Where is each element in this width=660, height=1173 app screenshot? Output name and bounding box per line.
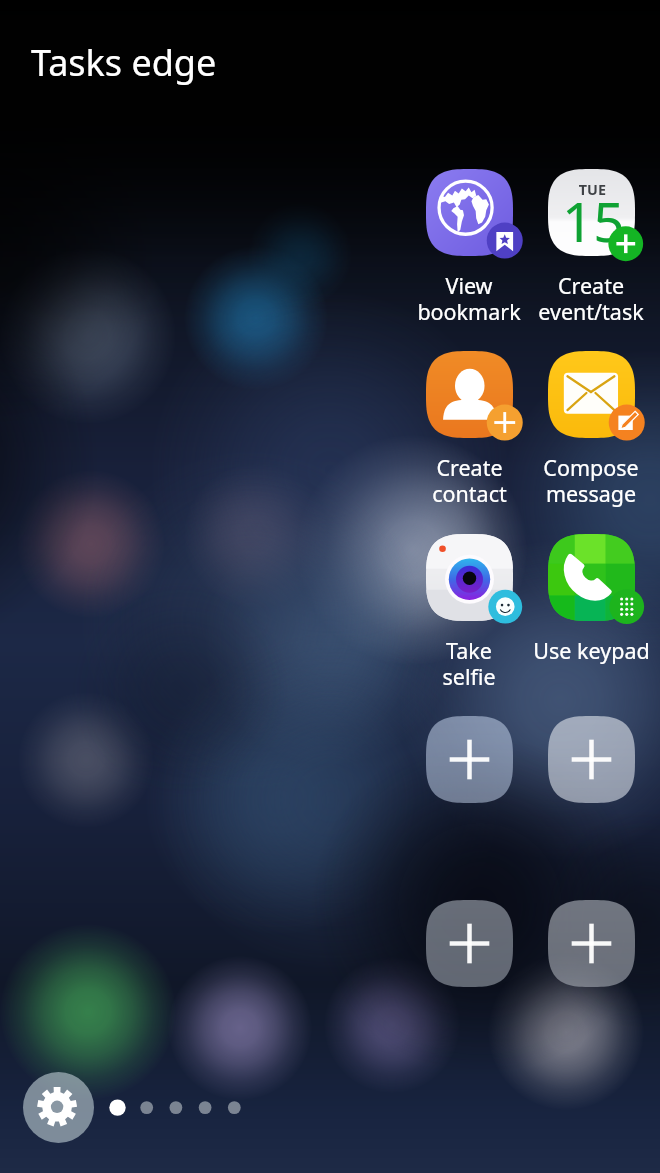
- button[interactable]: Create event or task: [531, 155, 651, 327]
- staticText: Take selfie: [442, 636, 496, 692]
- staticText: Tasks edge: [31, 38, 217, 87]
- button[interactable]: Create contact: [409, 337, 529, 509]
- staticText: Create contact: [432, 453, 507, 509]
- button[interactable]: Add shortcut: [531, 886, 651, 1001]
- staticText: View bookmark: [417, 271, 521, 327]
- staticText: Compose message: [543, 453, 639, 509]
- button[interactable]: Add shortcut: [409, 702, 529, 817]
- staticText: Create event/task: [538, 271, 644, 327]
- button[interactable]: Use keypad: [531, 520, 651, 665]
- button[interactable]: Add shortcut: [409, 886, 529, 1001]
- button[interactable]: Take selfie: [409, 520, 529, 692]
- button[interactable]: Add shortcut: [531, 702, 651, 817]
- staticText: Use keypad: [533, 636, 650, 665]
- button[interactable]: Compose message: [531, 337, 651, 509]
- button[interactable]: Settings: [23, 1072, 94, 1143]
- button[interactable]: View bookmark: [409, 155, 529, 327]
